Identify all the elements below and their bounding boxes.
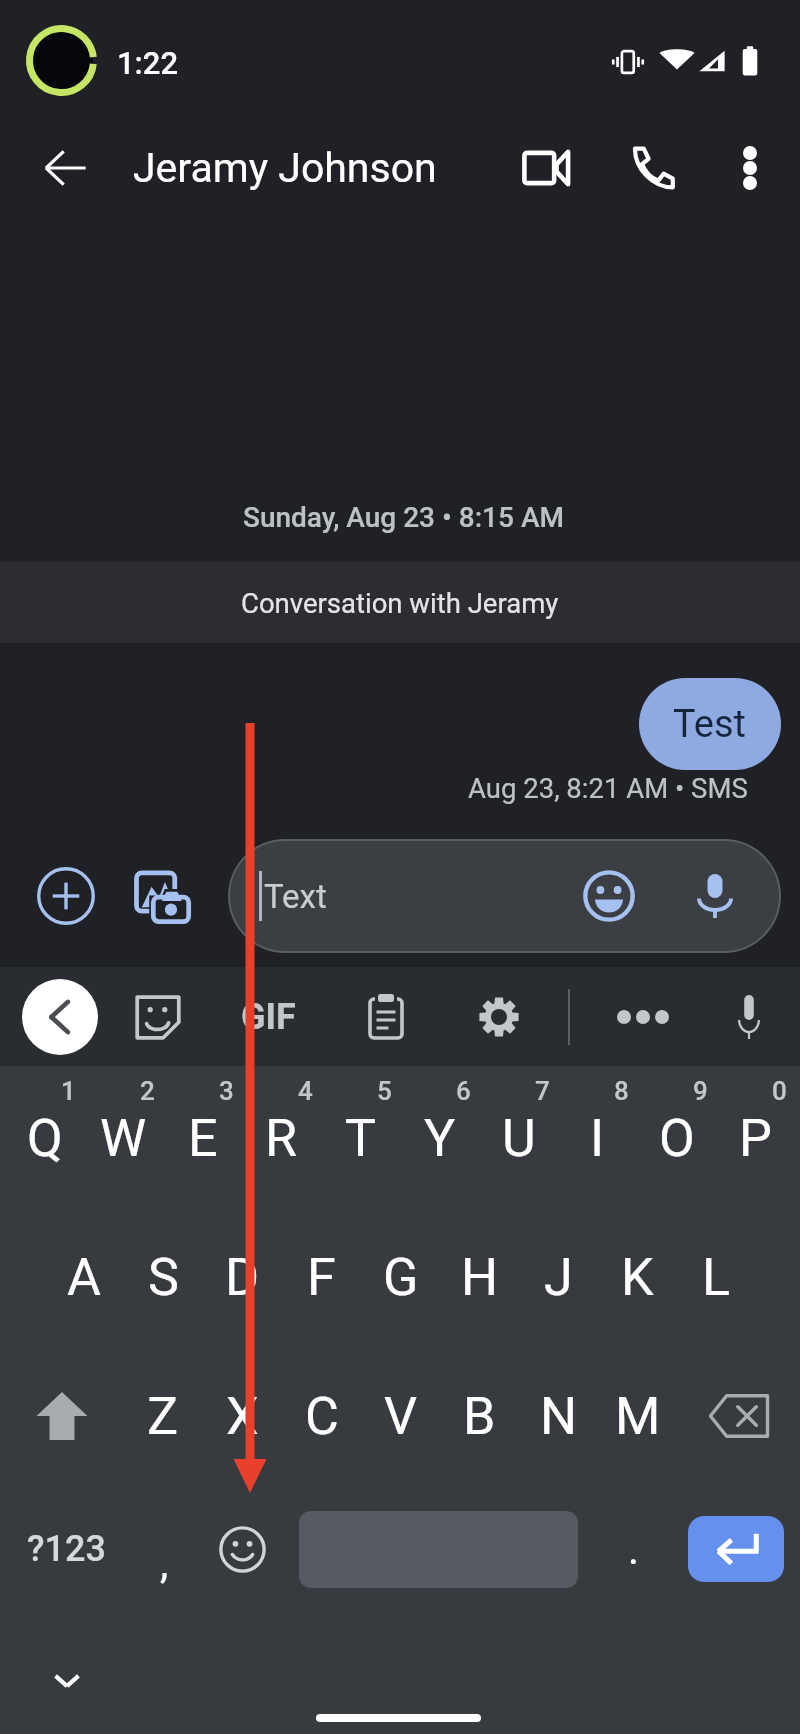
button[interactable]: Backspace [677, 1352, 800, 1480]
button[interactable]: B [440, 1352, 519, 1480]
button[interactable]: Stickers [123, 982, 193, 1052]
button[interactable]: 3 [163, 1066, 242, 1212]
button[interactable]: Text [228, 839, 781, 953]
button[interactable]: GIF [228, 977, 308, 1057]
button[interactable]: Voice input [679, 860, 751, 932]
staticText: Conversation with Jeramy [241, 587, 559, 619]
staticText: . [628, 1525, 640, 1574]
button[interactable]: C [282, 1352, 361, 1480]
staticText: 7 [535, 1076, 550, 1106]
staticText: N [540, 1386, 578, 1447]
staticText: Sunday, Aug 23 • 8:15 AM [243, 501, 565, 534]
staticText: K [621, 1247, 654, 1308]
staticText: L [702, 1247, 731, 1308]
staticText: B [463, 1386, 496, 1447]
staticText: Y [424, 1108, 456, 1169]
button[interactable]: K [598, 1213, 677, 1341]
staticText: T [345, 1108, 377, 1169]
staticText: Aug 23, 8:21 AM • SMS [468, 772, 748, 804]
button[interactable]: Shift [0, 1352, 123, 1480]
button[interactable]: Test [639, 678, 781, 770]
staticText: S [148, 1247, 179, 1308]
button[interactable]: M [598, 1352, 677, 1480]
button[interactable]: F [282, 1213, 361, 1341]
staticText: Z [147, 1386, 179, 1447]
staticText: 9 [693, 1076, 708, 1106]
button[interactable]: Clipboard [351, 982, 421, 1052]
button[interactable]: Expand toolbar [22, 979, 98, 1055]
staticText: W [100, 1108, 147, 1169]
button[interactable]: Z [123, 1352, 203, 1480]
staticText: 4 [298, 1076, 313, 1106]
staticText: GIF [241, 996, 296, 1038]
staticText: 6 [456, 1076, 471, 1106]
button[interactable]: Voice typing [714, 982, 784, 1052]
button[interactable]: N [519, 1352, 598, 1480]
button[interactable]: H [440, 1213, 519, 1341]
button[interactable]: Settings [464, 982, 534, 1052]
button[interactable]: Gallery [122, 856, 202, 936]
button[interactable]: 9 [637, 1066, 716, 1212]
button[interactable]: X [203, 1352, 282, 1480]
staticText: 3 [219, 1076, 234, 1106]
staticText: E [188, 1108, 218, 1169]
button[interactable]: G [361, 1213, 440, 1341]
staticText: Test [673, 702, 747, 747]
staticText: I [590, 1108, 605, 1169]
button[interactable]: 4 [242, 1066, 321, 1212]
button[interactable]: More [608, 982, 678, 1052]
button[interactable]: S [124, 1213, 203, 1341]
staticText: A [67, 1247, 101, 1308]
staticText: O [659, 1108, 695, 1169]
button[interactable]: Add attachment [26, 856, 106, 936]
button[interactable]: 7 [479, 1066, 558, 1212]
staticText: X [226, 1386, 259, 1447]
staticText: 1:22 [117, 45, 179, 81]
staticText: ?123 [27, 1528, 106, 1570]
staticText: V [384, 1386, 418, 1447]
staticText: R [265, 1108, 298, 1169]
staticText: J [544, 1247, 573, 1308]
button[interactable]: V [361, 1352, 440, 1480]
button[interactable]: 6 [400, 1066, 479, 1212]
button[interactable]: J [519, 1213, 598, 1341]
staticText: H [461, 1247, 499, 1308]
button[interactable]: 0 [716, 1066, 795, 1212]
button[interactable]: Back [30, 133, 100, 203]
staticText: 2 [140, 1076, 155, 1106]
button[interactable]: D [203, 1213, 282, 1341]
button[interactable]: ?123 [2, 1485, 130, 1613]
button[interactable]: Call [617, 132, 689, 204]
button[interactable]: 2 [84, 1066, 163, 1212]
button[interactable]: Hide keyboard [32, 1646, 102, 1716]
staticText: Q [27, 1108, 63, 1169]
button[interactable]: More options [714, 132, 786, 204]
button[interactable]: Enter [688, 1516, 784, 1582]
button[interactable]: A [44, 1213, 124, 1341]
button[interactable]: Video call [510, 132, 582, 204]
button[interactable]: 1 [5, 1066, 84, 1212]
staticText: 1 [61, 1076, 76, 1106]
button[interactable]: Emoji [573, 860, 645, 932]
staticText: Text [264, 877, 327, 916]
button[interactable]: Emoji [204, 1485, 280, 1613]
staticText: Jeramy Johnson [133, 144, 437, 192]
button[interactable]: , [130, 1485, 210, 1613]
staticText: U [502, 1108, 536, 1169]
staticText: C [305, 1386, 339, 1447]
staticText: , [160, 1539, 169, 1588]
staticText: 8 [614, 1076, 629, 1106]
button[interactable]: 8 [558, 1066, 637, 1212]
staticText: 5 [377, 1076, 392, 1106]
staticText: D [225, 1247, 260, 1308]
staticText: P [739, 1108, 772, 1169]
staticText: F [307, 1247, 336, 1308]
button[interactable]: 5 [321, 1066, 400, 1212]
staticText: G [383, 1247, 419, 1308]
staticText: M [615, 1386, 661, 1447]
button[interactable]: . [596, 1485, 672, 1613]
staticText: 0 [772, 1076, 787, 1106]
button[interactable]: Conversation with Jeramy [0, 562, 800, 643]
button[interactable]: L [677, 1213, 756, 1341]
